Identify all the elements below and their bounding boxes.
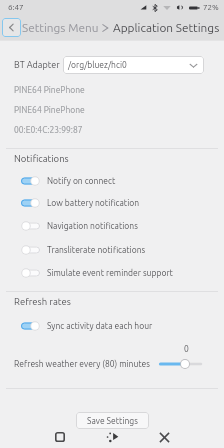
staticText: Refresh weather every (80) minutes [14,359,150,369]
staticText: Notify on connect [47,176,116,186]
staticText: 6:47 [8,3,24,12]
button[interactable]: Refresh interval [158,357,202,371]
staticText: Navigation notifications [47,221,138,231]
staticText: Transliterate notifications [47,245,146,255]
button[interactable]: Settings Menu [22,21,99,34]
button[interactable]: Notify on connect [0,172,224,190]
staticText: BT Adapter [14,60,60,70]
button[interactable]: Simulate event reminder support [0,264,224,282]
staticText: Refresh rates [14,296,71,307]
button[interactable]: Recent apps [42,426,77,448]
staticText: Sync activity data each hour [47,321,153,331]
button[interactable]: Sync activity data each hour [0,317,224,335]
staticText: Save Settings [87,416,138,426]
button[interactable]: Close [147,426,182,448]
staticText: /org/bluez/hci0 [68,60,127,70]
button[interactable]: /org/bluez/hci0 [63,56,204,74]
staticText: Simulate event reminder support [47,268,173,278]
button[interactable]: Save Settings [76,412,149,429]
button[interactable]: Transliterate notifications [0,241,224,259]
button[interactable]: Navigation notifications [0,217,224,235]
staticText: PINE64 PinePhone [14,105,85,115]
button[interactable]: Home [95,426,130,448]
staticText: PINE64 PinePhone [14,85,85,95]
staticText: Low battery notification [47,198,140,208]
staticText: 00:E0:4C:23:99:87 [14,125,83,135]
staticText: 0 [184,344,189,354]
staticText: 72% [203,3,219,12]
button[interactable]: Low battery notification [0,194,224,212]
button[interactable]: Back [2,18,21,37]
staticText: Application Settings [113,21,220,34]
staticText: Notifications [14,153,69,164]
